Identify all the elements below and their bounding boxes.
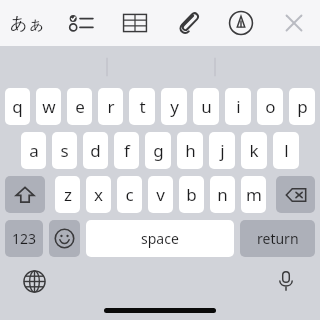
button[interactable]: i [225, 88, 251, 125]
button[interactable]: p [289, 88, 315, 125]
staticText: j [220, 139, 225, 162]
button[interactable]: a [21, 132, 46, 169]
button[interactable]: Emoji [49, 220, 80, 257]
staticText: a [29, 139, 39, 162]
button[interactable]: Change keyboard language [14, 261, 54, 301]
staticText: t [139, 95, 146, 118]
button[interactable]: Close [267, 0, 320, 46]
button[interactable]: u [193, 88, 219, 125]
button[interactable]: y [161, 88, 187, 125]
staticText: v [156, 183, 165, 206]
button[interactable]: Shift [5, 176, 45, 213]
staticText: m [246, 183, 262, 206]
button[interactable]: t [129, 88, 155, 125]
button[interactable]: z [55, 176, 80, 213]
button[interactable]: l [273, 132, 299, 169]
staticText: b [186, 183, 197, 206]
button[interactable]: h [177, 132, 203, 169]
staticText: c [125, 183, 134, 206]
button[interactable]: o [257, 88, 283, 125]
staticText: l [284, 139, 289, 162]
button[interactable]: s [52, 132, 77, 169]
staticText: w [42, 95, 56, 118]
staticText: e [75, 95, 85, 118]
button[interactable]: q [5, 88, 30, 125]
staticText: s [60, 139, 69, 162]
button[interactable]: e [67, 88, 92, 125]
button[interactable]: 123 [5, 220, 43, 257]
staticText: k [249, 139, 259, 162]
staticText: q [12, 95, 23, 118]
button[interactable]: Attach file [161, 0, 214, 46]
staticText: f [124, 139, 130, 162]
button[interactable]: c [117, 176, 142, 213]
button[interactable]: m [241, 176, 266, 213]
button[interactable]: Backspace [276, 176, 315, 213]
staticText: o [265, 95, 276, 118]
button[interactable]: space [86, 220, 234, 257]
staticText: i [236, 95, 241, 118]
staticText: u [201, 95, 212, 118]
staticText: あぁ [10, 13, 45, 34]
button[interactable]: w [36, 88, 61, 125]
button[interactable]: Markup [214, 0, 267, 46]
button[interactable]: Table [108, 0, 161, 46]
button[interactable]: Japanese input [0, 0, 54, 46]
staticText: z [64, 183, 72, 206]
button[interactable]: x [86, 176, 111, 213]
button[interactable]: k [241, 132, 267, 169]
button[interactable]: g [145, 132, 171, 169]
staticText: r [107, 95, 115, 118]
staticText: space [141, 229, 179, 248]
button[interactable]: f [114, 132, 139, 169]
button[interactable]: b [179, 176, 204, 213]
button[interactable]: Checklist [54, 0, 108, 46]
button[interactable]: r [98, 88, 123, 125]
staticText: p [297, 95, 308, 118]
staticText: d [90, 139, 101, 162]
staticText: h [185, 139, 196, 162]
staticText: n [217, 183, 228, 206]
button[interactable]: v [148, 176, 173, 213]
button[interactable]: Dictation [266, 261, 306, 301]
button[interactable]: j [209, 132, 235, 169]
button[interactable]: return [240, 220, 315, 257]
button[interactable]: n [210, 176, 235, 213]
staticText: 123 [12, 229, 37, 248]
button[interactable]: d [83, 132, 108, 169]
staticText: y [170, 95, 179, 118]
staticText: x [94, 183, 103, 206]
staticText: g [153, 139, 164, 162]
staticText: return [257, 229, 299, 248]
